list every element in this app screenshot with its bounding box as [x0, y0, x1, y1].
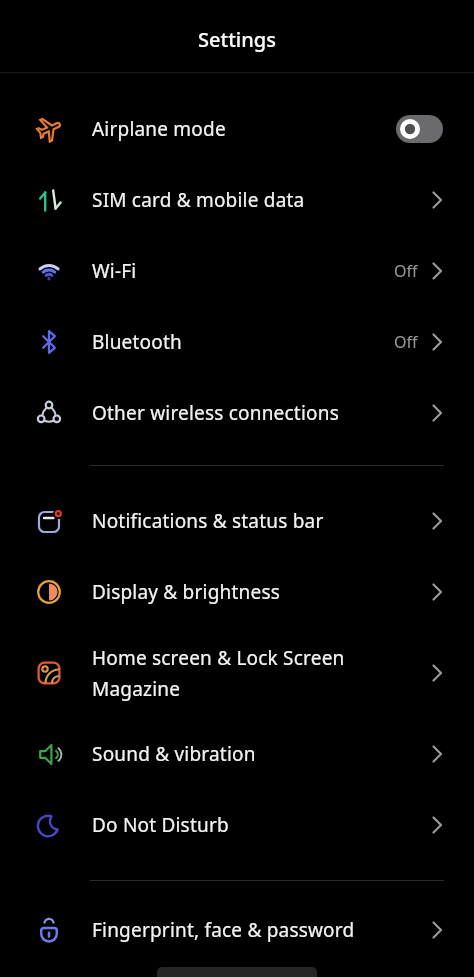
staticText: Other wireless connections	[92, 400, 339, 426]
button[interactable]: Wi-Fi	[0, 235, 474, 306]
staticText: Wi-Fi	[92, 258, 137, 284]
button[interactable]: Other wireless connections	[0, 377, 474, 448]
staticText: Off	[394, 331, 418, 353]
staticText: Home screen & Lock Screen Magazine	[92, 645, 345, 701]
staticText: Fingerprint, face & password	[92, 917, 355, 943]
button[interactable]: Fingerprint, face & password	[0, 894, 474, 965]
button[interactable]: Display & brightness	[0, 556, 474, 627]
staticText: Off	[394, 260, 418, 282]
button[interactable]: Home screen & Lock Screen Magazine	[0, 627, 474, 718]
staticText: Do Not Disturb	[92, 812, 229, 838]
staticText: Bluetooth	[92, 329, 182, 355]
button[interactable]: Bluetooth	[0, 306, 474, 377]
staticText: Display & brightness	[92, 579, 280, 605]
button[interactable]: SIM card & mobile data	[0, 164, 474, 235]
button[interactable]: Airplane mode	[0, 93, 474, 164]
staticText: Settings	[198, 26, 276, 53]
button[interactable]: Do Not Disturb	[0, 789, 474, 860]
staticText: SIM card & mobile data	[92, 187, 305, 213]
staticText: Airplane mode	[92, 116, 226, 142]
button[interactable]: Sound & vibration	[0, 718, 474, 789]
button[interactable]: Notifications & status bar	[0, 485, 474, 556]
staticText: Notifications & status bar	[92, 508, 324, 534]
staticText: Sound & vibration	[92, 741, 256, 767]
